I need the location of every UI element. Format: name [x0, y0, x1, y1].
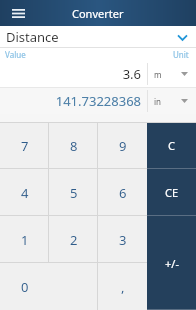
- staticText: in: [154, 96, 162, 107]
- button[interactable]: 8: [49, 122, 98, 169]
- button[interactable]: Clear: [147, 122, 196, 169]
- staticText: 6: [119, 184, 127, 202]
- staticText: Unit: [173, 49, 189, 60]
- staticText: Converter: [72, 6, 124, 21]
- staticText: 3.6: [122, 65, 141, 83]
- button[interactable]: 1: [0, 216, 49, 263]
- button[interactable]: 3.6: [0, 61, 147, 87]
- button[interactable]: 9: [98, 122, 147, 169]
- button[interactable]: Toggle sign: [147, 216, 196, 310]
- staticText: ,: [121, 278, 125, 296]
- staticText: C: [168, 138, 175, 153]
- staticText: 4: [21, 184, 29, 202]
- staticText: 8: [70, 137, 78, 155]
- button[interactable]: Distance: [0, 26, 196, 48]
- button[interactable]: ,: [98, 263, 147, 310]
- button[interactable]: 2: [49, 216, 98, 263]
- staticText: 9: [119, 137, 127, 155]
- staticText: +/-: [165, 256, 179, 271]
- staticText: 0: [21, 278, 29, 296]
- button[interactable]: m: [148, 61, 196, 87]
- button[interactable]: Clear entry: [147, 169, 196, 216]
- staticText: CE: [165, 185, 179, 200]
- staticText: 1: [21, 231, 29, 249]
- button[interactable]: 4: [0, 169, 49, 216]
- button[interactable]: 3: [98, 216, 147, 263]
- staticText: 141.73228368: [55, 92, 141, 110]
- button[interactable]: in: [148, 88, 196, 114]
- button[interactable]: 6: [98, 169, 147, 216]
- staticText: Distance: [6, 28, 59, 46]
- button[interactable]: Open navigation menu: [8, 3, 28, 23]
- button[interactable]: 5: [49, 169, 98, 216]
- staticText: Value: [5, 49, 26, 60]
- button[interactable]: 7: [0, 122, 49, 169]
- button[interactable]: 141.73228368: [0, 88, 147, 114]
- staticText: 7: [21, 137, 29, 155]
- staticText: 2: [70, 231, 78, 249]
- staticText: 5: [70, 184, 78, 202]
- button[interactable]: 0: [0, 263, 98, 310]
- staticText: m: [154, 69, 162, 80]
- staticText: 3: [119, 231, 127, 249]
